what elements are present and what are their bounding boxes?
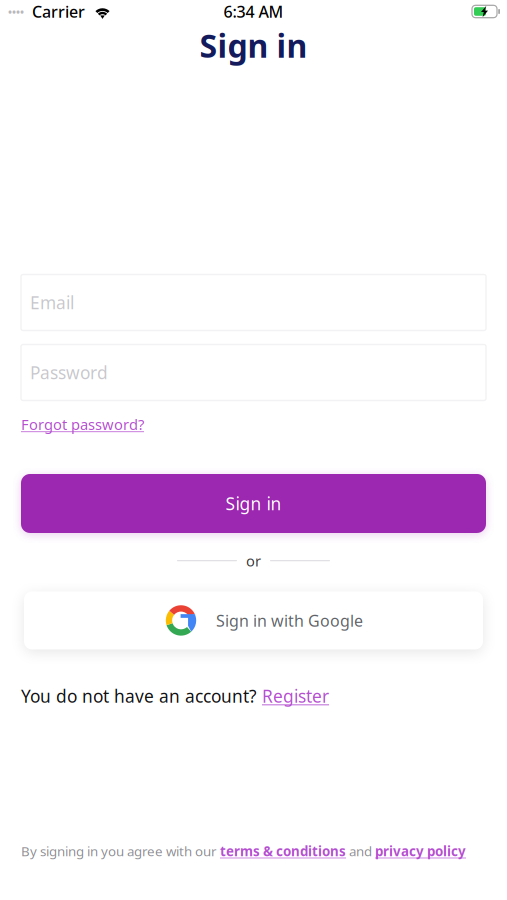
staticText: and (346, 842, 375, 860)
staticText: •••• (8, 4, 24, 19)
button[interactable]: Register (262, 684, 329, 707)
staticText: 6:34 AM (223, 1, 283, 22)
button[interactable]: Forgot password? (21, 414, 144, 434)
staticText: You do not have an account? (21, 684, 262, 707)
staticText: Carrier (24, 1, 93, 22)
staticText: Sign in with Google (216, 610, 363, 631)
staticText: Forgot password? (21, 414, 144, 434)
button[interactable]: Sign in with Google (24, 591, 483, 649)
button[interactable]: terms & conditions (220, 842, 346, 860)
staticText: By signing in you agree with our (21, 842, 220, 860)
staticText: Password (30, 361, 108, 384)
staticText: Register (262, 684, 329, 707)
staticText: privacy policy (375, 842, 466, 860)
staticText: or (246, 551, 261, 570)
staticText: terms & conditions (220, 842, 346, 860)
button[interactable]: Sign in (21, 474, 486, 533)
staticText: Sign in (225, 492, 281, 515)
staticText: Sign in (199, 24, 307, 66)
staticText: Email (30, 291, 74, 314)
button[interactable]: privacy policy (375, 842, 466, 860)
